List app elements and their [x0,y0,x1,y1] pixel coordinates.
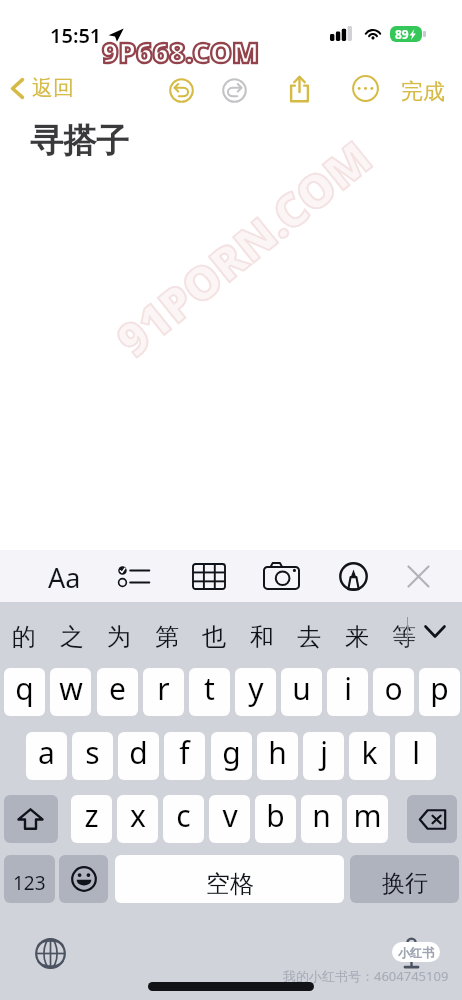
staticText: 91PORN.COM [103,126,384,370]
button[interactable]: 和 [242,610,282,652]
staticText: k [361,732,378,773]
button[interactable]: 换行 [350,855,459,903]
staticText: j [320,732,328,773]
staticText: g [222,732,241,773]
staticText: 91PORN.COM [103,126,384,370]
staticText: z [84,795,99,836]
button[interactable]: Share [280,70,318,108]
staticText: s [85,732,100,773]
button[interactable]: Emoji [59,855,108,903]
staticText: x [130,795,146,836]
button[interactable]: a [26,732,67,780]
staticText: v [222,795,238,836]
staticText: 15:51 [50,22,102,49]
staticText: 89 [395,26,409,42]
staticText: Aa [48,559,81,596]
button[interactable]: x [117,795,158,843]
button[interactable]: u [281,668,322,716]
staticText: 寻搭子 [30,120,129,162]
staticText: 空格 [206,869,254,899]
button[interactable]: f [164,732,205,780]
staticText: 来 [345,622,369,652]
button[interactable]: Shift [4,795,58,843]
button[interactable]: b [255,795,296,843]
button[interactable]: z [71,795,112,843]
staticText: 和 [250,622,274,652]
button[interactable]: w [50,668,91,716]
button[interactable]: n [301,795,342,843]
staticText: 123 [13,870,46,896]
staticText: o [384,668,403,709]
staticText: 9P668.COM [102,33,260,71]
button[interactable]: Redo [216,72,252,108]
button[interactable]: d [118,732,159,780]
button[interactable]: Camera [261,556,301,596]
staticText: d [129,732,148,773]
staticText: h [268,732,287,773]
button[interactable]: h [257,732,298,780]
staticText: 的 [12,622,36,652]
button[interactable]: k [349,732,390,780]
button[interactable]: s [72,732,113,780]
staticText: 去 [297,622,321,652]
button[interactable]: y [235,668,276,716]
staticText: 完成 [401,78,445,106]
button[interactable]: i [327,668,368,716]
button[interactable]: 的 [4,610,44,652]
button[interactable]: j [303,732,344,780]
button[interactable]: 为 [99,610,139,652]
staticText: 为 [107,622,131,652]
button[interactable]: m [347,795,388,843]
staticText: i [344,668,352,709]
button[interactable]: r [143,668,184,716]
button[interactable]: 等 [384,610,424,652]
button[interactable]: Undo [163,72,199,108]
button[interactable]: p [419,668,460,716]
button[interactable]: Close keyboard [398,556,438,596]
button[interactable]: Checklist [114,556,154,596]
staticText: f [179,732,190,773]
button[interactable]: c [163,795,204,843]
button[interactable]: 返回 [5,70,80,106]
button[interactable]: 空格 [115,855,344,903]
staticText: c [176,795,191,836]
button[interactable]: Switch language [30,933,70,973]
button[interactable]: g [211,732,252,780]
button[interactable]: q [4,668,45,716]
button[interactable]: e [97,668,138,716]
button[interactable]: Text format [44,556,84,596]
staticText: a [38,732,55,773]
staticText: n [312,795,331,836]
button[interactable]: More options [347,70,383,106]
staticText: p [430,668,449,709]
staticText: 之 [60,622,84,652]
button[interactable]: Dictation [391,933,431,973]
button[interactable]: 去 [289,610,329,652]
button[interactable]: Table [189,556,229,596]
staticText: 9P668.COM [102,33,260,71]
staticText: 小红书 [398,945,434,960]
button[interactable]: 之 [52,610,92,652]
button[interactable]: 来 [337,610,377,652]
button[interactable]: o [373,668,414,716]
button[interactable]: t [189,668,230,716]
button[interactable]: 完成 [396,72,450,112]
button[interactable]: Backspace [407,795,457,843]
button[interactable]: Markup [333,556,373,596]
staticText: w [59,668,83,709]
staticText: 返回 [32,75,74,101]
staticText: y [248,668,264,709]
staticText: u [292,668,311,709]
button[interactable]: 也 [194,610,234,652]
button[interactable]: 第 [147,610,187,652]
staticText: 也 [202,622,226,652]
staticText: 等 [392,622,416,652]
button[interactable]: v [209,795,250,843]
staticText: 换行 [382,869,428,898]
staticText: e [109,668,126,709]
button[interactable]: l [395,732,436,780]
staticText: 第 [155,622,179,652]
button[interactable]: Expand candidates [414,610,456,652]
button[interactable]: 123 [4,855,55,903]
staticText: b [266,795,285,836]
